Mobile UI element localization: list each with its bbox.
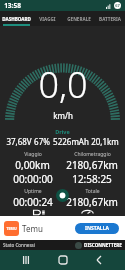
staticText: Viaggio — [24, 151, 42, 158]
button[interactable]: Home — [53, 250, 73, 270]
staticText: 67% — [34, 136, 50, 147]
button[interactable]: TEMU — [4, 216, 121, 240]
button[interactable]: VIAGGI — [32, 11, 63, 26]
staticText: 5226mAh — [53, 136, 89, 147]
staticText: 2180,67km — [66, 195, 118, 209]
button[interactable]: INSTALLA — [75, 223, 119, 234]
staticText: DASHBOARD — [2, 16, 31, 22]
staticText: 12:58:25 — [72, 172, 112, 186]
button[interactable]: Back — [89, 250, 109, 270]
staticText: VIAGGI — [39, 16, 56, 22]
staticText: 2180,67km — [66, 158, 118, 172]
button[interactable]: Status — [56, 189, 69, 202]
staticText: 20,1km — [91, 136, 119, 147]
button[interactable]: BATTERIA — [94, 11, 125, 26]
button[interactable]: GENERALE — [63, 11, 94, 26]
staticText: 37,68V — [6, 136, 32, 147]
staticText: 00:00:00 — [13, 172, 53, 186]
staticText: 67 — [115, 3, 120, 8]
button[interactable]: DASHBOARD — [0, 11, 32, 26]
button[interactable]: Speedometer — [77, 209, 97, 216]
staticText: Totale — [85, 188, 100, 195]
staticText: 0,0 — [38, 60, 88, 109]
staticText: Uptime — [24, 188, 42, 195]
staticText: Temu — [22, 223, 43, 234]
staticText: 00:00:24 — [13, 195, 53, 209]
staticText: TEMU — [6, 226, 17, 231]
staticText: BATTERIA — [99, 16, 121, 22]
staticText: Chilometraggio — [74, 151, 111, 158]
staticText: Drive — [55, 128, 70, 135]
staticText: GENERALE — [67, 16, 91, 22]
staticText: DISCONNETTERE — [84, 242, 122, 248]
button[interactable]: Recents — [16, 250, 36, 270]
staticText: 0,00km — [15, 158, 50, 172]
staticText: INSTALLA — [85, 225, 109, 232]
staticText: km/h — [53, 110, 73, 121]
staticText: 13:58 — [4, 1, 21, 10]
button[interactable]: Headlight — [28, 209, 48, 216]
staticText: Stato Connessi — [3, 242, 35, 248]
